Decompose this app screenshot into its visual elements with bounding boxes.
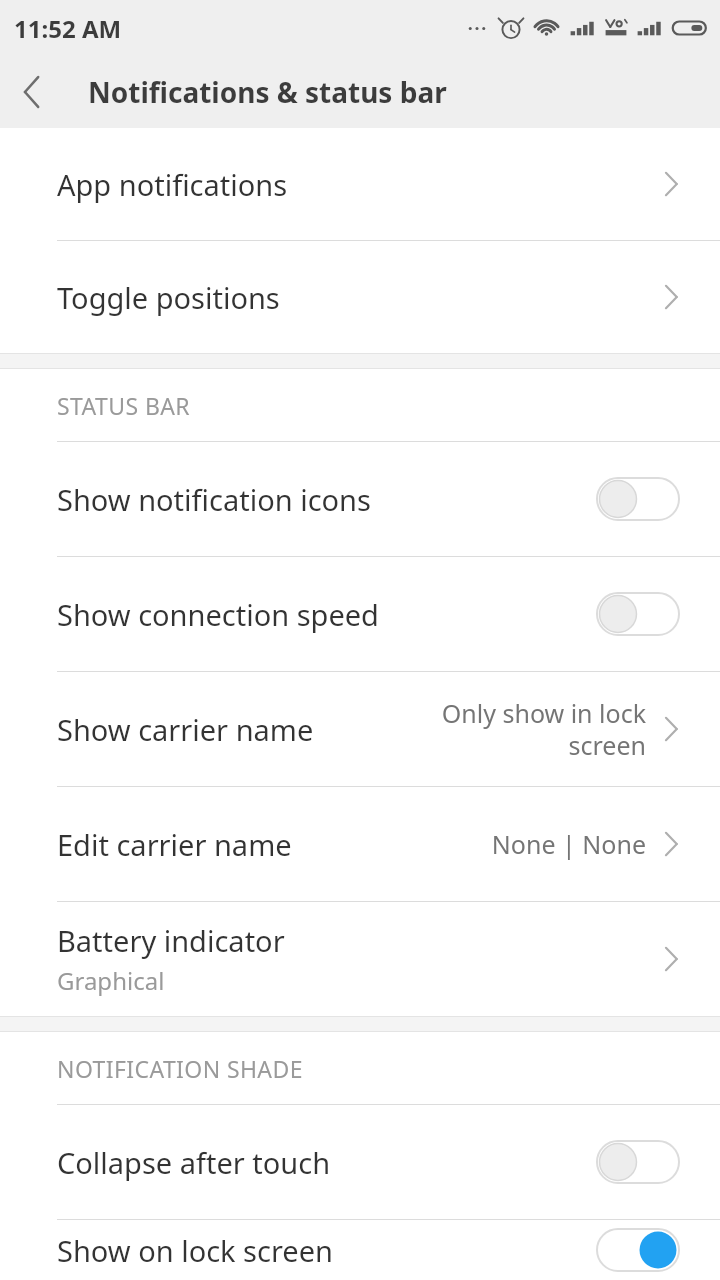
staticText: Edit carrier name [57,825,292,864]
button[interactable]: Edit carrier name [0,787,720,901]
staticText: Battery indicator [57,921,285,960]
button[interactable]: Battery indicator [0,902,720,1016]
staticText: Notifications & status bar [88,73,447,111]
staticText: Graphical [57,964,165,997]
staticText: Collapse after touch [57,1143,596,1182]
button[interactable]: App notifications [0,128,720,240]
button[interactable]: Back [0,60,64,124]
button[interactable]: Toggle positions [0,241,720,353]
staticText: App notifications [57,165,662,204]
staticText: None | None [491,827,646,861]
button[interactable]: Show carrier name [0,672,720,786]
staticText: Toggle positions [57,278,662,317]
staticText: Only show in lock screen [441,696,646,762]
staticText: Show notification icons [57,480,596,519]
button[interactable]: Show notification icons [0,442,720,556]
staticText: Show carrier name [57,710,314,749]
button[interactable]: Show on lock screen [0,1220,720,1280]
button[interactable]: Collapse after touch [0,1105,720,1219]
other: Off [596,477,680,521]
staticText: 11:52 AM [14,12,122,45]
other: On [596,1228,680,1272]
other: Off [596,1140,680,1184]
staticText: Show on lock screen [57,1231,596,1270]
staticText: STATUS BAR [57,390,191,421]
other: Off [596,592,680,636]
staticText: NOTIFICATION SHADE [57,1053,303,1084]
button[interactable]: Show connection speed [0,557,720,671]
staticText: Show connection speed [57,595,596,634]
